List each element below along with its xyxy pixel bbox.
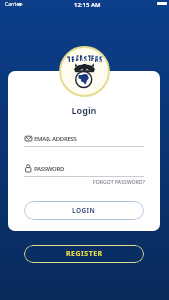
staticText: LOGIN	[72, 206, 96, 215]
staticText: M	[79, 52, 83, 61]
staticText: EMAIL ADDRESS	[34, 135, 77, 143]
staticText: R	[94, 53, 98, 62]
staticText: Carrier	[5, 1, 22, 8]
staticText: REGISTER	[66, 249, 103, 259]
staticText: PASSWORD	[34, 165, 65, 173]
staticText: E	[90, 52, 94, 61]
staticText: FORGOT PASSWORD?	[93, 179, 146, 186]
staticText: S	[83, 52, 86, 61]
staticText: T	[87, 52, 91, 61]
staticText: 12:15 AM	[74, 1, 101, 9]
staticText: Login	[8, 104, 160, 116]
staticText: S	[98, 53, 102, 62]
staticText: T	[66, 53, 70, 62]
button[interactable]: LOGIN	[24, 201, 144, 220]
button[interactable]: REGISTER	[24, 245, 144, 263]
button[interactable]: FORGOT PASSWORD?	[93, 179, 146, 186]
staticText: A	[75, 52, 78, 61]
staticText: E	[71, 53, 75, 62]
